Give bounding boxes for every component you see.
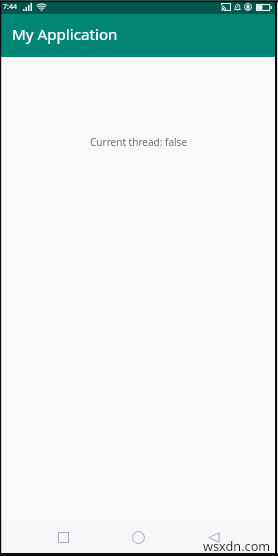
button[interactable]: Recents bbox=[26, 520, 101, 554]
button[interactable]: Home bbox=[101, 520, 176, 554]
staticText: 7:44 bbox=[3, 2, 17, 12]
staticText: My Application bbox=[12, 24, 118, 45]
staticText: Current thread: false bbox=[90, 135, 188, 149]
staticText: wsxdn.com bbox=[203, 537, 271, 554]
button[interactable]: Back bbox=[176, 520, 251, 554]
